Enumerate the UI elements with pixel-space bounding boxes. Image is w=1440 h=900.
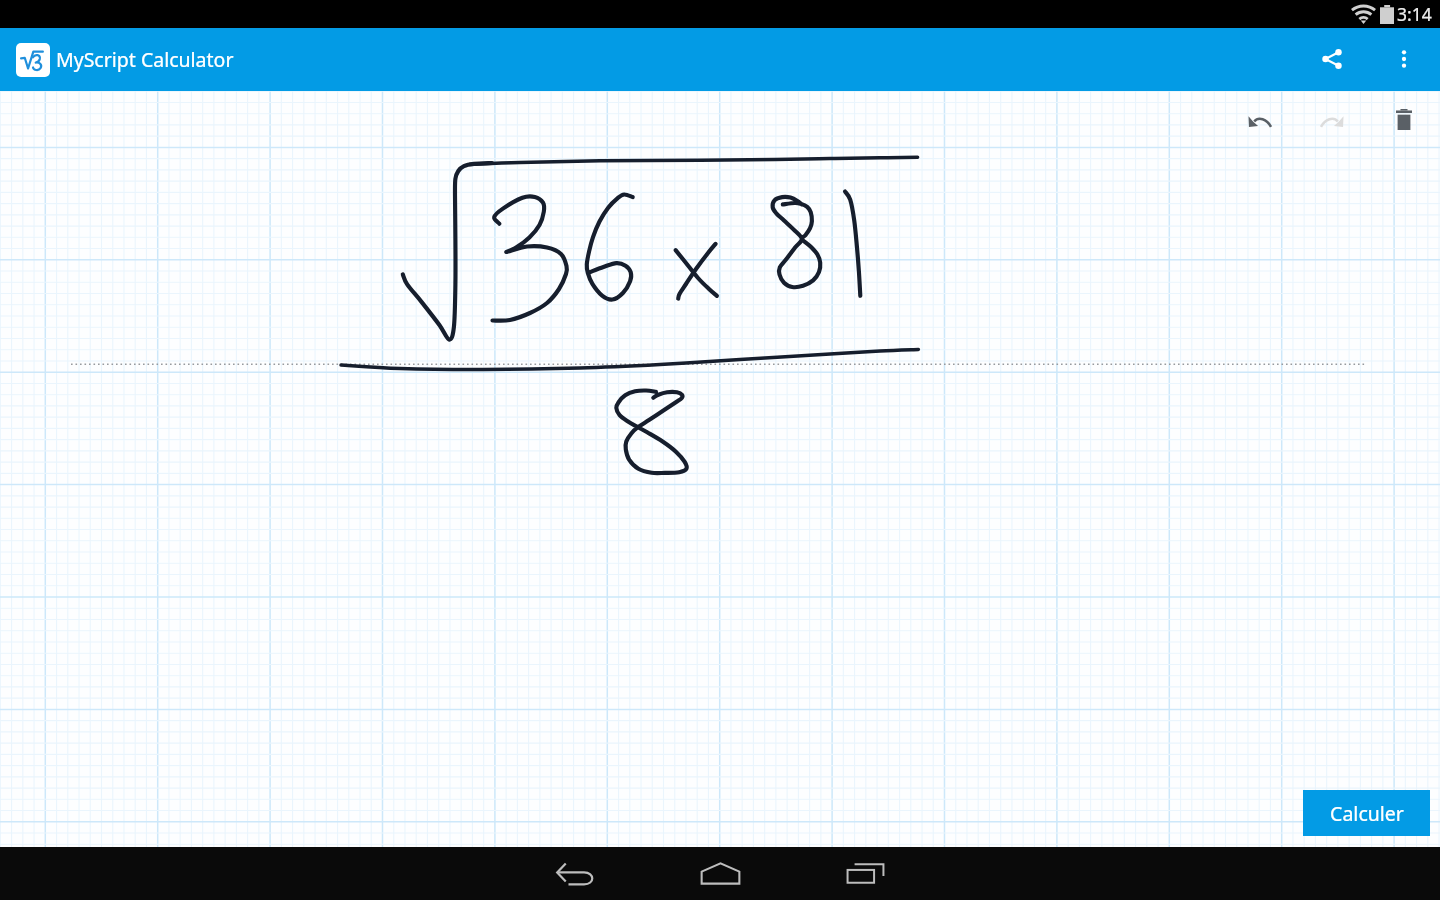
staticText: MyScript Calculator xyxy=(56,46,234,73)
button[interactable]: Delete xyxy=(1368,91,1440,147)
button[interactable]: Redo xyxy=(1296,91,1368,147)
staticText: Calculer xyxy=(1330,800,1404,827)
button[interactable]: Share xyxy=(1296,28,1368,91)
button[interactable]: Calculer xyxy=(1303,790,1430,836)
staticText: 3:14 xyxy=(1397,2,1432,26)
button[interactable]: Undo xyxy=(1224,91,1296,147)
button[interactable]: Recent apps xyxy=(810,847,920,900)
button[interactable]: Back xyxy=(520,847,630,900)
button[interactable]: Home xyxy=(665,847,775,900)
button[interactable]: More options xyxy=(1368,28,1440,91)
